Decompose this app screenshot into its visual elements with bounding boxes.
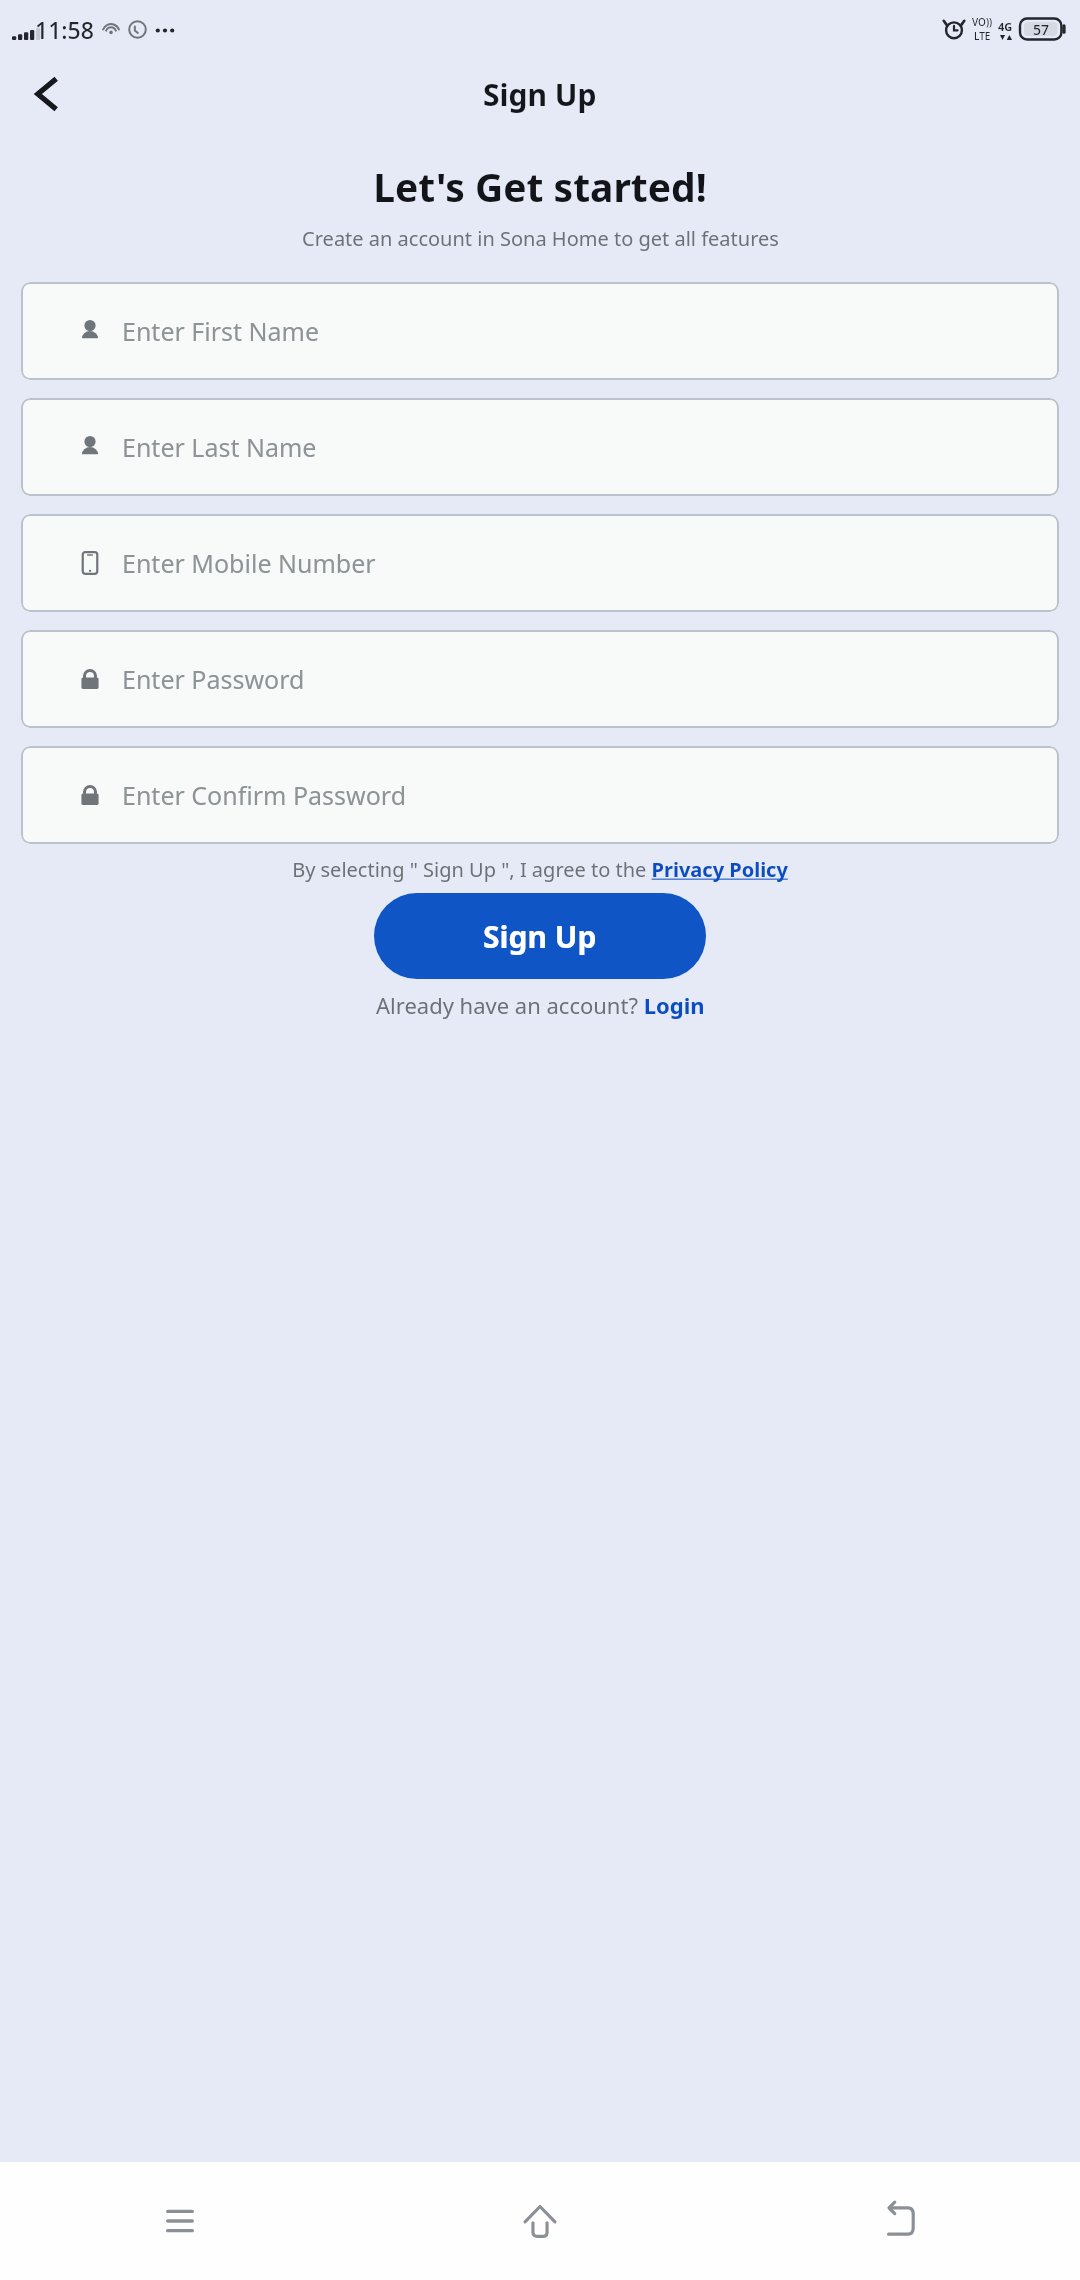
button[interactable]: Back [18,66,74,122]
button[interactable]: Already have an account? Login [376,990,705,1020]
button[interactable]: Enter Password [21,630,1059,728]
button[interactable]: Home [360,2162,720,2280]
button[interactable]: Back [720,2162,1080,2280]
staticText: VO)) [972,15,993,29]
button[interactable]: Sign Up [374,893,706,979]
staticText: 4G [998,19,1013,34]
button[interactable]: Enter Last Name [21,398,1059,496]
staticText: 57 [1033,20,1050,39]
staticText: Sign Up [483,74,597,115]
button[interactable]: Enter First Name [21,282,1059,380]
staticText: Let's Get started! [373,160,707,213]
button[interactable]: Enter Mobile Number [21,514,1059,612]
button[interactable]: Enter Confirm Password [21,746,1059,844]
button[interactable]: By selecting " Sign Up ", I agree to the… [292,856,788,883]
staticText: Enter Confirm Password [122,778,407,812]
staticText: Enter Mobile Number [122,546,376,580]
staticText: 11:58 [35,14,94,45]
staticText: LTE [974,29,991,43]
staticText: Enter Last Name [122,430,317,464]
staticText: Sign Up [483,916,597,957]
staticText: Create an account in Sona Home to get al… [302,225,779,252]
staticText: Enter Password [122,662,305,696]
button[interactable]: Recent apps [0,2162,360,2280]
staticText: Enter First Name [122,314,320,348]
